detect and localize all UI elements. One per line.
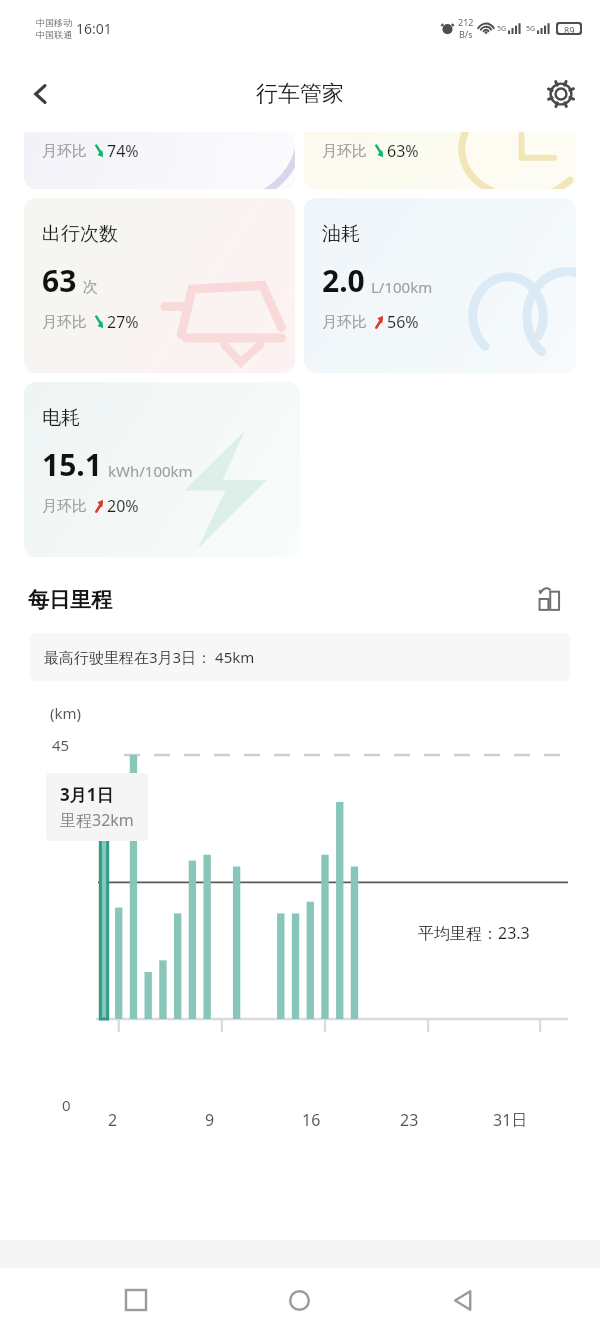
button[interactable]: 月环比: [304, 132, 576, 189]
staticText: 月环比: [42, 497, 87, 516]
button[interactable]: 出行次数: [24, 198, 295, 373]
staticText: 3月1日: [60, 783, 114, 806]
button[interactable]: Back: [436, 1273, 490, 1327]
staticText: 89: [564, 24, 575, 33]
staticText: 每日里程: [28, 587, 112, 613]
staticText: L/100km: [371, 277, 433, 297]
staticText: 45: [52, 735, 70, 755]
button[interactable]: Home: [272, 1273, 326, 1327]
staticText: 15.1: [42, 444, 102, 485]
button[interactable]: Switch chart type: [530, 579, 572, 621]
staticText: 电耗: [42, 406, 80, 430]
staticText: 5G: [497, 24, 507, 34]
staticText: 74%: [107, 140, 139, 162]
staticText: 23: [400, 1109, 419, 1127]
staticText: 63: [42, 260, 77, 301]
staticText: (km): [50, 703, 82, 723]
staticText: 最高行驶里程在3月3日： 45km: [44, 647, 255, 667]
staticText: 212: [458, 16, 474, 28]
staticText: 2.0: [322, 260, 365, 301]
button[interactable]: 电耗: [24, 382, 300, 557]
staticText: 0: [62, 1095, 71, 1115]
staticText: 31日: [493, 1109, 528, 1127]
staticText: 出行次数: [42, 222, 118, 246]
staticText: 油耗: [322, 222, 360, 246]
staticText: 20%: [107, 495, 139, 517]
button[interactable]: 油耗: [304, 198, 576, 373]
staticText: 27%: [107, 311, 139, 333]
button[interactable]: Recent apps: [109, 1273, 163, 1327]
staticText: 行车管家: [256, 80, 344, 108]
staticText: 5G: [526, 24, 536, 34]
staticText: 里程32km: [60, 809, 134, 831]
staticText: 月环比: [322, 313, 367, 332]
staticText: 中国移动: [36, 17, 72, 28]
staticText: 月环比: [42, 313, 87, 332]
staticText: 平均里程：23.3: [418, 922, 530, 944]
staticText: 中国联通: [36, 29, 72, 40]
staticText: 63%: [387, 140, 419, 162]
staticText: kWh/100km: [108, 461, 193, 481]
staticText: 16:01: [76, 19, 112, 38]
staticText: 月环比: [322, 142, 367, 161]
staticText: 9: [205, 1109, 215, 1127]
staticText: 2: [108, 1109, 118, 1127]
button[interactable]: Settings: [538, 71, 584, 117]
button[interactable]: 月环比: [24, 132, 295, 189]
staticText: 16: [302, 1109, 321, 1127]
staticText: 56%: [387, 311, 419, 333]
staticText: 月环比: [42, 142, 87, 161]
staticText: 次: [83, 278, 98, 297]
staticText: B/s: [459, 28, 473, 40]
button[interactable]: Back: [18, 71, 64, 117]
